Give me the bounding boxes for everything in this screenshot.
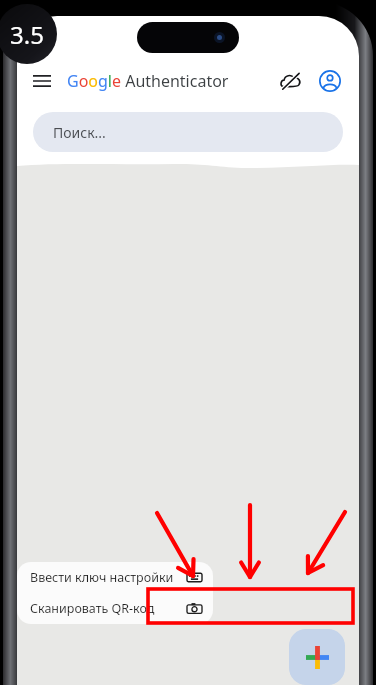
staticText: Google Authenticator: [67, 70, 229, 92]
staticText: Ввести ключ настройки: [30, 569, 174, 586]
button[interactable]: Ввести ключ настройки: [17, 562, 213, 593]
button[interactable]: Menu: [23, 62, 61, 100]
staticText: Поиск...: [53, 123, 106, 142]
button[interactable]: Add code: [289, 629, 345, 685]
button[interactable]: Сканировать QR-код: [17, 593, 213, 624]
staticText: 3.5: [10, 18, 44, 51]
button[interactable]: Account: [311, 62, 349, 100]
button[interactable]: Поиск...: [33, 112, 343, 152]
button[interactable]: Sync off: [271, 62, 309, 100]
staticText: Сканировать QR-код: [30, 600, 155, 617]
